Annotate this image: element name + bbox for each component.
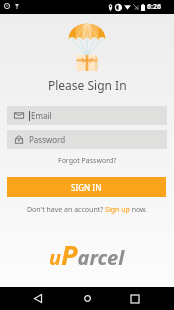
button[interactable]: Back xyxy=(20,287,56,310)
staticText: SIGN IN xyxy=(71,182,102,193)
button[interactable]: Recent apps xyxy=(117,287,153,310)
button[interactable]: Home xyxy=(69,287,105,310)
staticText: Email xyxy=(31,110,52,121)
staticText: uParcel xyxy=(49,236,125,273)
button[interactable]: Forgot Password? xyxy=(54,154,121,168)
staticText: Forgot Password? xyxy=(58,156,117,166)
button[interactable]: SIGN IN xyxy=(7,177,166,197)
button[interactable]: Email xyxy=(7,106,167,125)
button[interactable]: Don't have an account? Sign up now. xyxy=(23,203,152,217)
staticText: Password xyxy=(29,134,66,145)
button[interactable]: Password xyxy=(7,130,167,149)
staticText: 6:26 xyxy=(147,2,161,12)
staticText: Please Sign In xyxy=(48,77,127,93)
staticText: Don't have an account? Sign up now. xyxy=(27,205,148,215)
